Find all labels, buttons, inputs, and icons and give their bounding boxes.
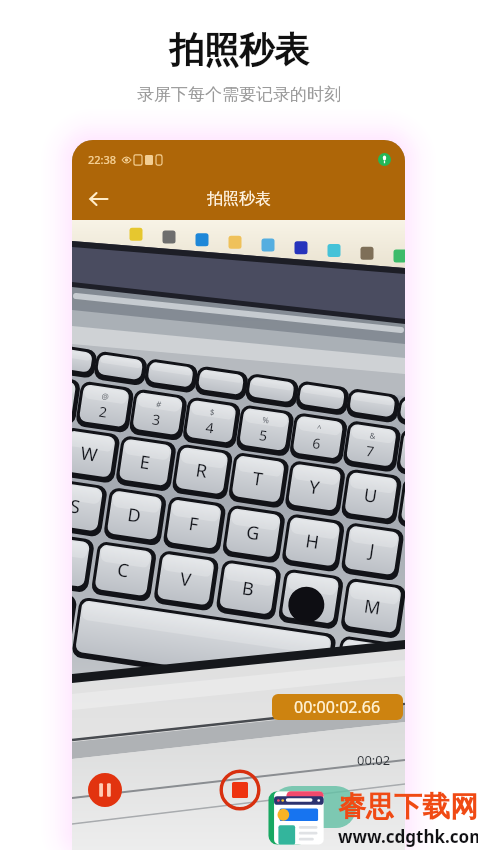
button[interactable]: Back [82,182,116,216]
staticText: www.cdgthk.com [338,825,478,848]
button[interactable]: Pause [88,773,122,807]
staticText: 录屏下每个需要记录的时刻 [137,84,341,105]
staticText: 00:02 [357,751,391,769]
staticText: 睿思下载网 [338,789,478,824]
staticText: 拍照秒表 [207,189,271,209]
staticText: 22:38 [88,152,117,167]
staticText: 00:00:02.66 [294,696,381,718]
button[interactable]: Stop recording [219,769,261,811]
staticText: 拍照秒表 [169,28,309,72]
